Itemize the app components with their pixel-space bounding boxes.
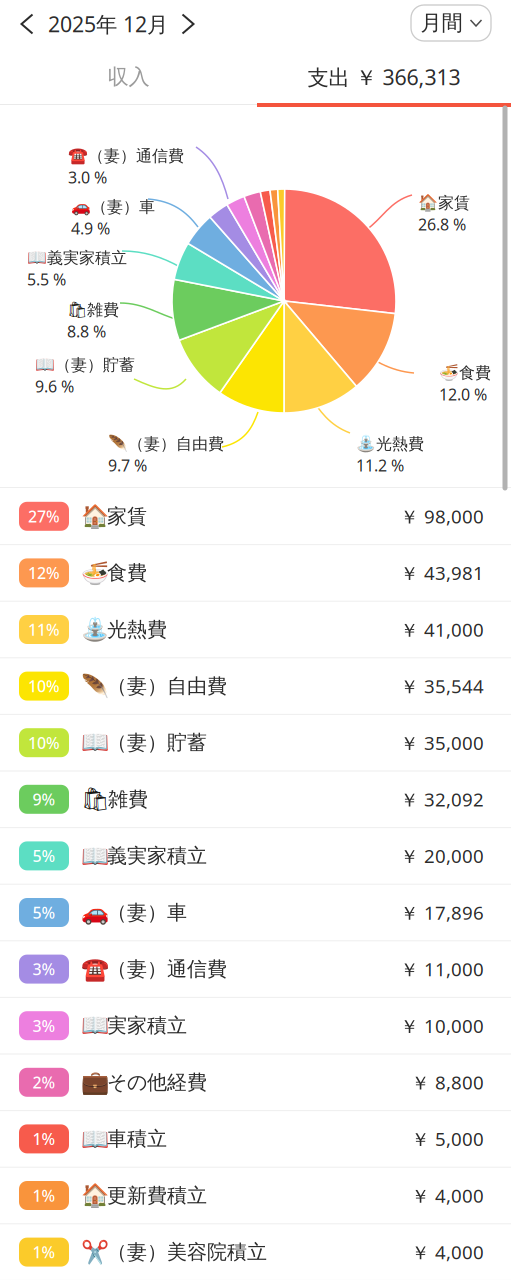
staticText: 9%: [32, 789, 55, 810]
staticText: 雑費: [87, 300, 119, 320]
staticText: 📖: [81, 1126, 109, 1152]
staticText: 1%: [32, 1241, 55, 1263]
staticText: 🏠: [81, 1183, 109, 1208]
staticText: 光熱費: [107, 617, 167, 642]
staticText: ￥ 41,000: [400, 617, 484, 642]
button[interactable]: Next month: [166, 1, 210, 47]
staticText: 食費: [459, 363, 491, 383]
staticText: 1%: [32, 1185, 55, 1206]
staticText: 5%: [32, 902, 55, 923]
staticText: 5.5 %: [27, 269, 66, 290]
staticText: 1%: [32, 1128, 55, 1149]
staticText: 📖: [27, 249, 47, 267]
staticText: 月間: [420, 10, 462, 36]
staticText: ￥ 35,544: [400, 674, 484, 699]
button[interactable]: 支出 ￥ 366,313: [257, 49, 511, 104]
staticText: 4.9 %: [71, 218, 110, 239]
staticText: 9.7 %: [108, 455, 147, 476]
staticText: 2025年 12月: [48, 10, 168, 38]
staticText: 10%: [28, 732, 60, 753]
staticText: ☎️: [68, 147, 88, 165]
staticText: 🏠: [81, 503, 109, 529]
button[interactable]: 3%: [0, 941, 511, 997]
staticText: 更新費積立: [107, 1183, 207, 1208]
staticText: その他経費: [107, 1070, 207, 1095]
button[interactable]: 5%: [0, 828, 511, 884]
staticText: 📖: [81, 730, 109, 756]
staticText: 🚗: [81, 900, 109, 925]
staticText: 収入: [107, 64, 149, 90]
staticText: （妻）美容院積立: [107, 1240, 267, 1264]
staticText: （妻）自由費: [107, 674, 227, 698]
staticText: ￥ 4,000: [411, 1183, 484, 1208]
staticText: ☎️: [81, 956, 109, 982]
staticText: 10%: [28, 675, 60, 697]
staticText: 3%: [32, 958, 55, 980]
staticText: 車積立: [107, 1127, 167, 1151]
staticText: 8.8 %: [67, 321, 106, 342]
staticText: 家賃: [438, 193, 470, 213]
staticText: 義実家積立: [107, 844, 207, 868]
staticText: （妻）自由費: [128, 434, 224, 454]
staticText: ￥ 17,896: [400, 900, 484, 925]
button[interactable]: 1%: [0, 1111, 511, 1167]
staticText: 📖: [81, 843, 109, 869]
staticText: ⛲: [356, 435, 376, 453]
staticText: （妻）貯蓄: [55, 355, 135, 375]
staticText: 雑費: [108, 787, 148, 812]
staticText: 5%: [32, 845, 55, 866]
staticText: 🍜: [81, 560, 109, 586]
button[interactable]: 月間: [411, 5, 491, 41]
staticText: 📖: [35, 356, 55, 374]
button[interactable]: 1%: [0, 1224, 511, 1280]
staticText: 27%: [28, 506, 60, 527]
button[interactable]: 5%: [0, 884, 511, 941]
button[interactable]: 10%: [0, 714, 511, 771]
staticText: ￥ 43,981: [400, 560, 484, 585]
staticText: （妻）通信費: [88, 146, 184, 166]
button[interactable]: 2%: [0, 1054, 511, 1111]
staticText: 11.2 %: [356, 455, 404, 476]
staticText: 9.6 %: [35, 376, 74, 397]
staticText: ￥ 35,000: [400, 730, 484, 755]
staticText: （妻）通信費: [107, 957, 227, 981]
staticText: ￥ 10,000: [400, 1013, 484, 1038]
button[interactable]: Previous month: [5, 1, 49, 47]
staticText: 食費: [107, 561, 147, 585]
staticText: 🪶: [81, 673, 109, 699]
button[interactable]: 3%: [0, 997, 511, 1054]
staticText: 🪶: [108, 435, 128, 453]
staticText: ⛲: [81, 617, 109, 642]
staticText: 光熱費: [376, 434, 424, 454]
button[interactable]: 収入: [0, 49, 257, 104]
staticText: ￥ 5,000: [411, 1126, 484, 1151]
button[interactable]: 27%: [0, 488, 511, 545]
staticText: ￥ 11,000: [400, 957, 484, 982]
staticText: 🛍: [67, 301, 87, 319]
staticText: 12.0 %: [439, 384, 487, 405]
staticText: 3%: [32, 1015, 55, 1036]
staticText: 🚗: [71, 198, 91, 216]
staticText: ✂️: [81, 1239, 109, 1265]
staticText: 義実家積立: [47, 248, 127, 268]
staticText: ￥ 8,800: [411, 1070, 484, 1095]
staticText: ￥ 32,092: [400, 787, 484, 812]
staticText: ￥ 98,000: [400, 504, 484, 529]
staticText: （妻）車: [91, 197, 155, 217]
staticText: 家賃: [107, 504, 147, 529]
staticText: 3.0 %: [68, 167, 107, 188]
staticText: 🛍: [81, 786, 110, 812]
button[interactable]: 12%: [0, 545, 511, 601]
staticText: 11%: [28, 619, 60, 640]
button[interactable]: 1%: [0, 1167, 511, 1224]
staticText: 💼: [81, 1069, 109, 1095]
staticText: 支出 ￥ 366,313: [307, 63, 460, 91]
button[interactable]: 11%: [0, 601, 511, 658]
button[interactable]: 10%: [0, 658, 511, 714]
staticText: ￥ 4,000: [411, 1240, 484, 1265]
staticText: 26.8 %: [418, 214, 466, 235]
staticText: 🏠: [418, 194, 438, 212]
staticText: 12%: [28, 562, 60, 583]
staticText: 実家積立: [107, 1013, 187, 1038]
button[interactable]: 9%: [0, 771, 511, 828]
